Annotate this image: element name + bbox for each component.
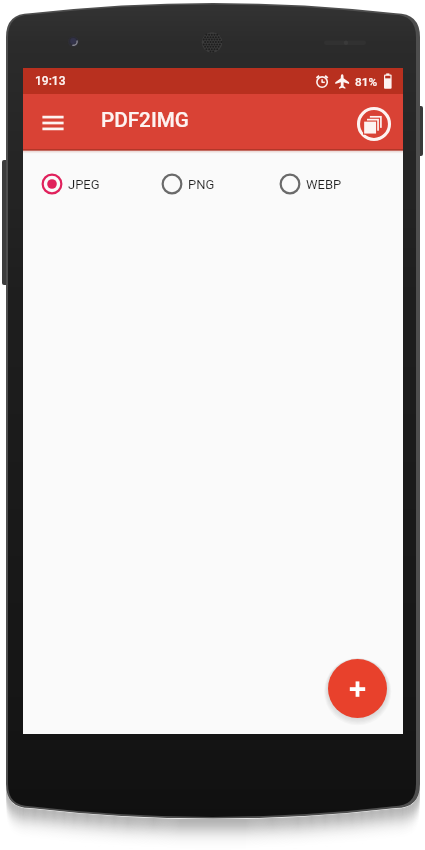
button[interactable]: Select pages — [352, 102, 396, 146]
staticText: 19:13 — [35, 74, 66, 88]
staticText: 81% — [355, 75, 378, 89]
staticText: PDF2IMG — [101, 108, 189, 132]
staticText: WEBP — [306, 177, 342, 192]
staticText: PNG — [188, 177, 215, 192]
button[interactable]: PNG — [156, 168, 222, 200]
button[interactable]: Open navigation drawer — [31, 105, 75, 141]
button[interactable]: JPEG — [36, 168, 108, 200]
button[interactable]: WEBP — [274, 168, 340, 200]
button[interactable]: Add PDF — [328, 659, 387, 718]
staticText: JPEG — [68, 177, 100, 192]
